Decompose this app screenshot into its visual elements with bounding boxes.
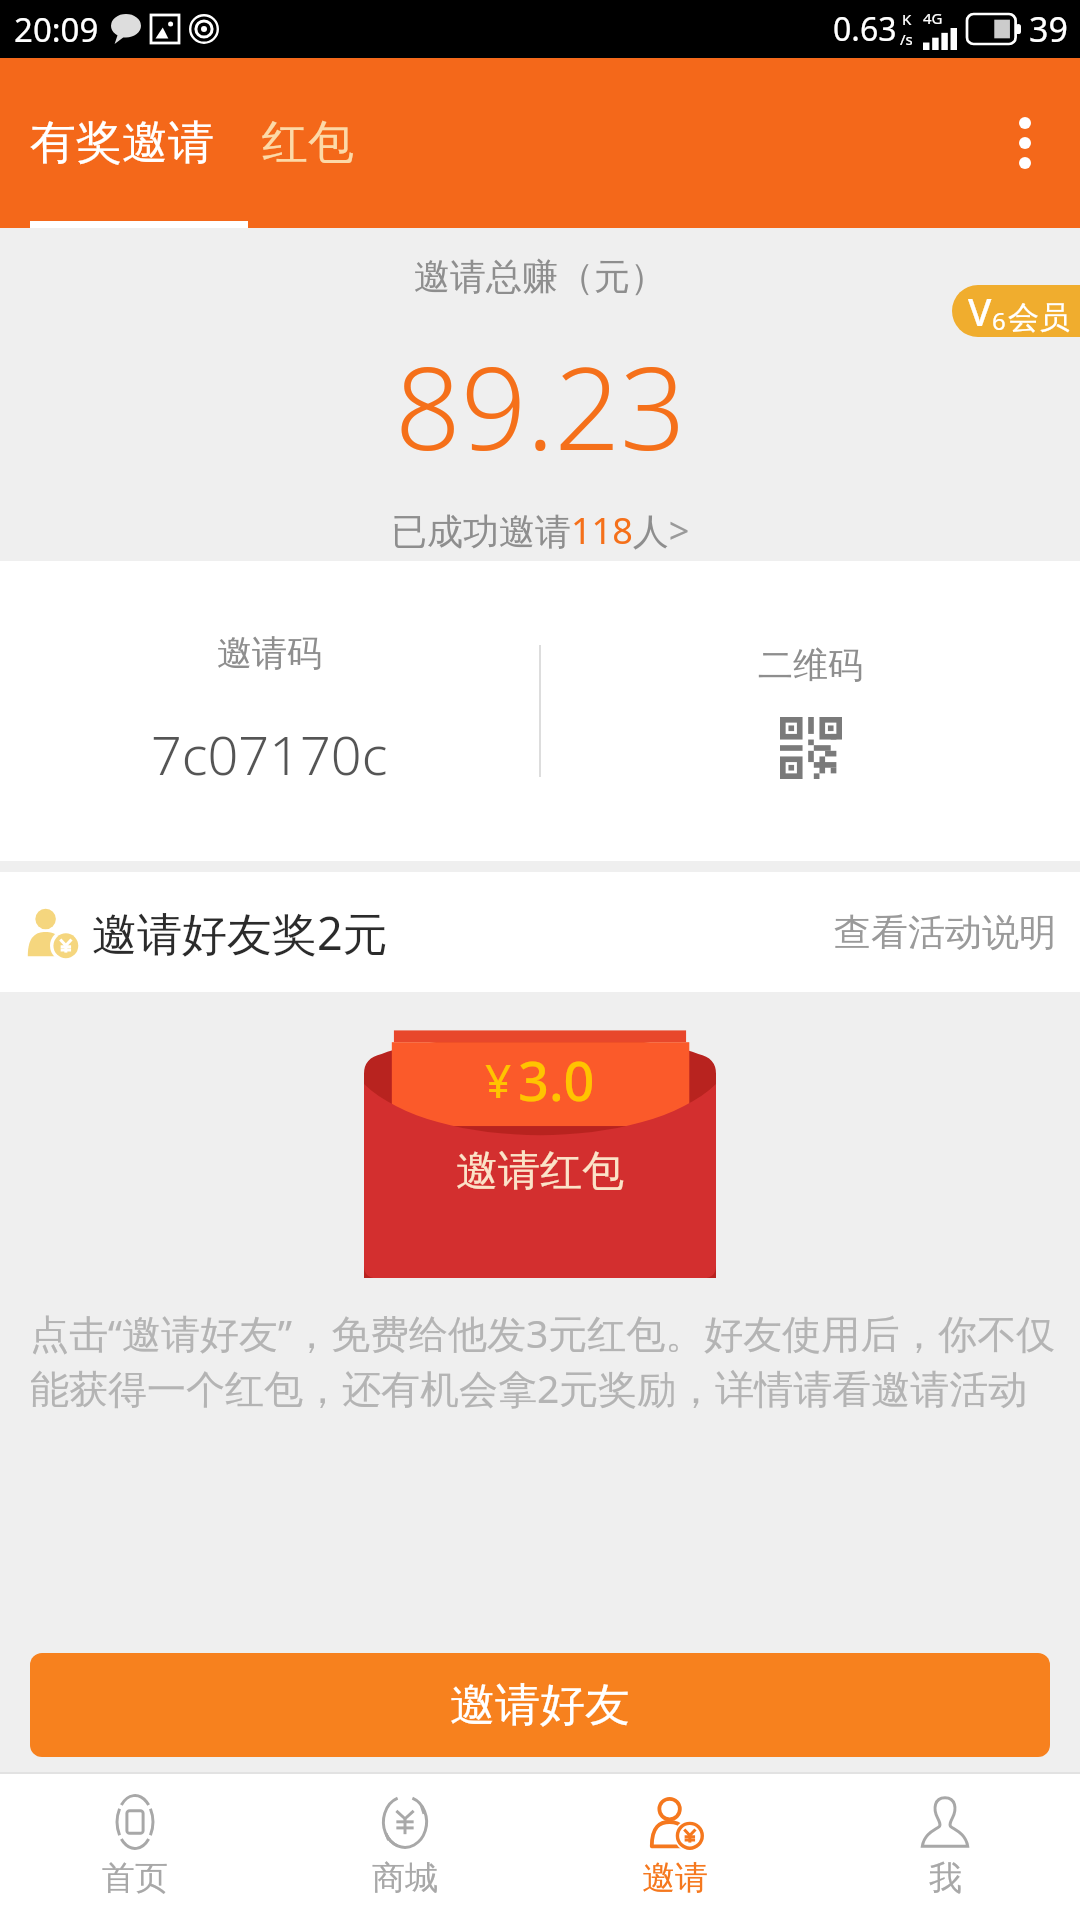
staticText: ¥ bbox=[485, 1049, 512, 1112]
staticText: 邀请总赚（元） bbox=[414, 254, 666, 299]
staticText: 7c07170c bbox=[151, 717, 388, 791]
staticText: 点击“邀请好友”，免费给他发3元红包。好友使用后，你不仅能获得一个红包，还有机会… bbox=[30, 1306, 1056, 1415]
button[interactable]: 有奖邀请 bbox=[30, 114, 214, 172]
button[interactable]: 红包 bbox=[262, 114, 354, 172]
staticText: 4G bbox=[923, 8, 943, 28]
button[interactable]: 商城 bbox=[270, 1774, 540, 1920]
staticText: 已成功邀请118人> bbox=[391, 506, 690, 555]
staticText: 有奖邀请 bbox=[30, 114, 214, 172]
staticText: 6 bbox=[992, 304, 1006, 337]
button[interactable]: 首页 bbox=[0, 1774, 270, 1920]
staticText: K bbox=[902, 9, 912, 29]
button[interactable]: 二维码 bbox=[541, 561, 1080, 861]
button[interactable]: 我 bbox=[810, 1774, 1080, 1920]
staticText: V bbox=[968, 285, 992, 337]
staticText: 3.0 bbox=[518, 1043, 595, 1117]
staticText: 邀请码 bbox=[217, 631, 322, 675]
button[interactable]: 邀请码 bbox=[0, 561, 539, 861]
staticText: 邀请 bbox=[642, 1857, 708, 1899]
staticText: 红包 bbox=[262, 114, 354, 172]
button[interactable]: 邀请好友 bbox=[30, 1653, 1050, 1757]
staticText: 查看活动说明 bbox=[834, 909, 1056, 956]
button[interactable]: V bbox=[952, 285, 1080, 337]
staticText: 会员 bbox=[1008, 298, 1070, 337]
staticText: 商城 bbox=[372, 1857, 438, 1899]
staticText: /s bbox=[900, 29, 913, 49]
staticText: 20:09 bbox=[14, 7, 99, 52]
button[interactable]: 邀请好友奖2元 bbox=[0, 872, 1080, 992]
staticText: 二维码 bbox=[758, 643, 863, 687]
staticText: 邀请好友奖2元 bbox=[92, 902, 388, 963]
staticText: 0.63 bbox=[833, 7, 897, 51]
button[interactable]: 已成功邀请118人> bbox=[391, 506, 690, 555]
button[interactable]: 邀请 bbox=[540, 1774, 810, 1920]
staticText: 我 bbox=[929, 1857, 962, 1899]
staticText: 89.23 bbox=[395, 327, 686, 484]
button[interactable]: 邀请红包 bbox=[364, 1016, 716, 1278]
staticText: 邀请好友 bbox=[450, 1677, 630, 1734]
button[interactable]: More options bbox=[970, 88, 1080, 198]
staticText: 首页 bbox=[102, 1857, 168, 1899]
staticText: 39 bbox=[1029, 6, 1068, 52]
staticText: 邀请红包 bbox=[456, 1145, 624, 1198]
